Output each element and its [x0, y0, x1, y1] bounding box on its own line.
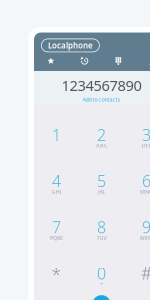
button[interactable]: 9	[124, 198, 150, 244]
button[interactable]: 8	[79, 198, 124, 244]
button[interactable]: Keypad	[101, 55, 135, 67]
staticText: 6	[142, 170, 150, 191]
staticText: MNO	[140, 188, 150, 195]
staticText: ABC	[96, 142, 107, 149]
button[interactable]: *	[34, 244, 79, 290]
staticText: +	[100, 280, 103, 288]
button[interactable]: 7	[34, 198, 79, 244]
staticText: Add to contacts	[82, 96, 120, 103]
staticText: 8	[97, 216, 106, 238]
staticText: 1234567890	[61, 75, 141, 95]
staticText: #	[141, 261, 150, 284]
staticText: TUV	[96, 234, 106, 241]
staticText: WXYZ	[139, 234, 150, 241]
button[interactable]: Favourites	[34, 55, 68, 67]
staticText: PQRS	[50, 234, 63, 241]
button[interactable]: 5	[79, 152, 124, 198]
button[interactable]: 3	[124, 106, 150, 152]
staticText: Localphone	[48, 40, 93, 51]
staticText: 1	[52, 124, 61, 145]
button[interactable]: Recents	[68, 55, 102, 67]
staticText: 4	[52, 170, 61, 191]
button[interactable]: 1	[34, 106, 79, 152]
staticText: JKL	[97, 188, 105, 195]
staticText: DEF	[141, 142, 150, 149]
staticText: *	[51, 263, 61, 286]
staticText: 9	[142, 216, 150, 238]
button[interactable]: 4	[34, 152, 79, 198]
button[interactable]: 0	[79, 244, 124, 290]
button[interactable]: 2	[79, 106, 124, 152]
button[interactable]: Call	[88, 291, 114, 300]
button[interactable]: 6	[124, 152, 150, 198]
button[interactable]: Contacts	[135, 55, 150, 67]
staticText: 3	[142, 124, 150, 145]
staticText: GHI	[51, 188, 61, 195]
button[interactable]: #	[124, 244, 150, 290]
button[interactable]: Add to contacts	[79, 95, 123, 103]
staticText: 5	[97, 170, 106, 191]
staticText: 2	[97, 124, 106, 145]
staticText: 7	[52, 216, 61, 238]
staticText: 0	[97, 263, 106, 284]
